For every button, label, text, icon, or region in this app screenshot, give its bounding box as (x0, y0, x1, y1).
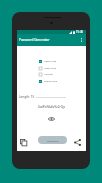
button[interactable]: More options (77, 34, 86, 46)
button[interactable]: Number (17, 71, 86, 78)
button[interactable]: Upper case (17, 58, 86, 65)
staticText: Lower case (44, 67, 56, 70)
staticText: Password Generator (19, 38, 50, 42)
staticText: Special case (44, 80, 57, 83)
staticText: Number (44, 73, 53, 76)
staticText: Upper case (44, 60, 57, 63)
button[interactable]: Share (72, 137, 83, 148)
button[interactable]: Copy password (18, 137, 29, 148)
staticText: Gw8!sNb#vKz2rQp (17, 105, 86, 109)
button[interactable]: GENERATE (38, 136, 67, 144)
button[interactable]: Lower case (17, 65, 86, 72)
staticText: Length: 15 (19, 95, 35, 99)
staticText: 15:46 (76, 30, 84, 34)
button[interactable]: Toggle password visibility (46, 113, 57, 124)
staticText: GENERATE (47, 139, 59, 142)
button[interactable]: Special case (17, 78, 86, 85)
